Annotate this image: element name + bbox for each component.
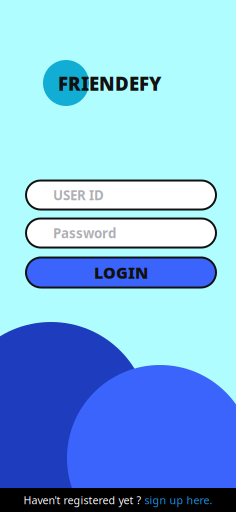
staticText: FRIENDEFY — [58, 71, 161, 96]
button[interactable]: LOGIN — [26, 257, 216, 287]
staticText: LOGIN — [94, 262, 148, 283]
staticText: Password — [53, 224, 116, 242]
button[interactable]: Password — [26, 218, 216, 247]
button[interactable]: sign up here. — [144, 493, 212, 507]
staticText: Haven't registered yet ? — [23, 493, 141, 507]
staticText: sign up here. — [144, 493, 212, 507]
staticText: USER ID — [53, 186, 104, 204]
button[interactable]: USER ID — [26, 180, 216, 209]
